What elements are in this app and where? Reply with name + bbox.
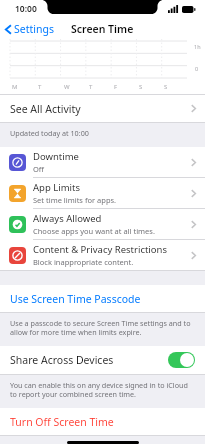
button[interactable]: Turn Off Screen Time — [0, 408, 205, 435]
staticText: Content & Privacy Restrictions — [33, 243, 167, 256]
staticText: Choose apps you want at all times. — [33, 226, 155, 236]
staticText: S — [164, 83, 168, 91]
button[interactable]: Use Screen Time Passcode — [0, 285, 205, 312]
staticText: S — [139, 83, 143, 91]
staticText: F — [114, 83, 118, 91]
staticText: 0 — [195, 65, 199, 72]
staticText: Set time limits for apps. — [33, 195, 117, 205]
staticText: Downtime — [33, 150, 79, 163]
staticText: 10:00 — [15, 3, 37, 15]
staticText: T — [38, 83, 42, 91]
staticText: Off — [33, 164, 45, 174]
staticText: Updated today at 10:00 — [10, 128, 89, 138]
staticText: See All Activity — [10, 102, 81, 116]
staticText: You can enable this on any device signed… — [10, 380, 193, 399]
other: Back — [5, 24, 12, 35]
staticText: Settings — [14, 22, 54, 36]
staticText: T — [89, 83, 93, 91]
button[interactable]: Back — [0, 20, 60, 38]
button[interactable]: Share Across Devices — [0, 346, 205, 374]
staticText: W — [64, 83, 70, 91]
staticText: Screen Time — [71, 22, 134, 36]
staticText: Always Allowed — [33, 212, 102, 225]
staticText: Use a passcode to secure Screen Time set… — [10, 318, 193, 337]
button[interactable]: Downtime — [0, 147, 205, 177]
staticText: Turn Off Screen Time — [10, 415, 114, 429]
button[interactable]: See All Activity — [0, 95, 205, 122]
button[interactable]: Always Allowed — [0, 209, 205, 239]
button[interactable]: App Limits — [0, 178, 205, 208]
staticText: Use Screen Time Passcode — [10, 292, 141, 306]
staticText: M — [12, 83, 18, 91]
staticText: Share Across Devices — [10, 353, 114, 367]
staticText: 1h — [194, 43, 201, 50]
staticText: Block inappropriate content. — [33, 257, 134, 267]
button[interactable]: Content & Privacy Restrictions — [0, 240, 205, 270]
staticText: App Limits — [33, 181, 80, 194]
button[interactable]: Share Across Devices toggle — [168, 352, 195, 368]
